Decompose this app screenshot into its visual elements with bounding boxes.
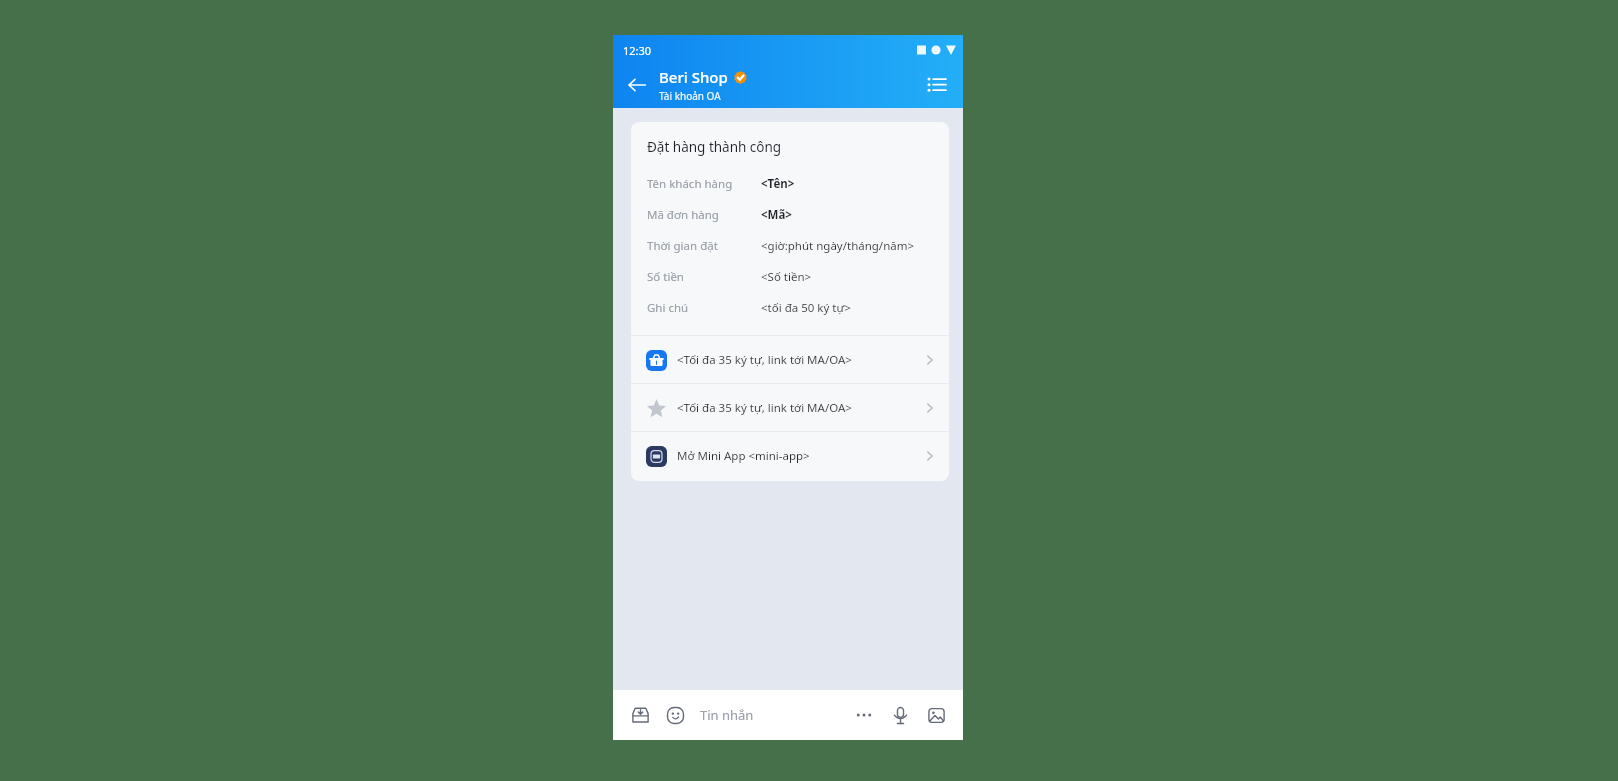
staticText: <tối đa 50 ký tự> [761, 300, 851, 316]
staticText: Tài khoản OA [659, 89, 721, 103]
staticText: Tên khách hàng [647, 176, 733, 192]
staticText: <giờ:phút ngày/tháng/năm> [761, 238, 915, 254]
button[interactable]: Tin nhắn [700, 706, 849, 724]
button[interactable]: <Tối đa 35 ký tự, link tới MA/OA> [631, 336, 949, 383]
staticText: 12:30 [623, 43, 652, 58]
staticText: Đặt hàng thành công [647, 138, 782, 156]
button[interactable]: Voice message [885, 700, 915, 730]
button[interactable]: <Tối đa 35 ký tự, link tới MA/OA> [631, 384, 949, 431]
staticText: <Số tiền> [761, 269, 812, 285]
staticText: Thời gian đặt [647, 238, 718, 254]
staticText: Mã đơn hàng [647, 207, 719, 223]
staticText: Mở Mini App <mini-app> [677, 448, 923, 464]
button[interactable]: More options [849, 700, 879, 730]
staticText: <Tối đa 35 ký tự, link tới MA/OA> [677, 400, 923, 416]
button[interactable]: Emoji [660, 700, 690, 730]
button[interactable]: Menu [917, 66, 955, 104]
button[interactable]: Back [618, 66, 656, 104]
button[interactable]: Sticker tray [625, 700, 655, 730]
staticText: Số tiền [647, 269, 684, 285]
staticText: <Tối đa 35 ký tự, link tới MA/OA> [677, 352, 923, 368]
staticText: Beri Shop [659, 67, 728, 87]
button[interactable]: Mở Mini App <mini-app> [631, 432, 949, 479]
button[interactable]: Send image [921, 700, 951, 730]
staticText: <Tên> [761, 176, 795, 192]
staticText: Ghi chú [647, 300, 689, 316]
button[interactable]: Beri Shop [659, 67, 917, 103]
staticText: <Mã> [761, 207, 792, 223]
